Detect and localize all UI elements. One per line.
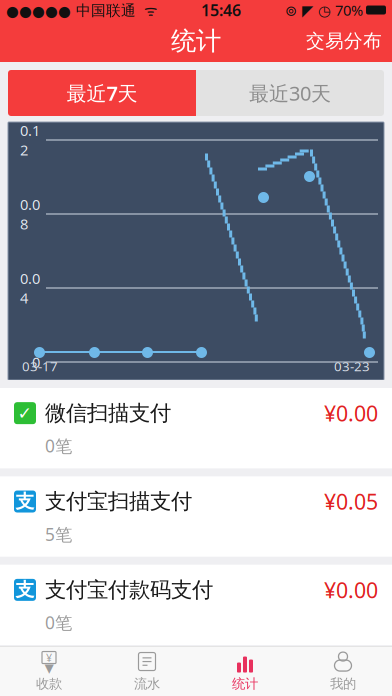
staticText: 交易分布 bbox=[306, 29, 382, 52]
button[interactable]: 流水 bbox=[98, 647, 196, 696]
staticText: ¥0.00 bbox=[324, 399, 378, 427]
staticText: ▾ bbox=[44, 657, 53, 678]
button[interactable]: 统计 bbox=[196, 647, 294, 696]
staticText: 支付宝扫描支付 bbox=[45, 488, 192, 515]
button[interactable]: 交易分布 bbox=[296, 21, 392, 60]
staticText: 统计 bbox=[171, 25, 221, 56]
button[interactable]: ✓ bbox=[0, 388, 392, 468]
staticText: ⊚ ◤ ◷ 70% bbox=[285, 0, 363, 20]
staticText: ●●●●● 中国联通 ᯤ bbox=[6, 0, 157, 20]
button[interactable]: 我的 bbox=[294, 647, 392, 696]
staticText: 03-17 bbox=[22, 357, 58, 375]
staticText: 我的 bbox=[330, 676, 356, 692]
staticText: 微信付款码支付 bbox=[45, 665, 192, 691]
staticText: 统计 bbox=[232, 676, 258, 692]
staticText: 15:46 bbox=[201, 0, 241, 21]
staticText: 最近30天 bbox=[249, 80, 331, 106]
button[interactable]: 支 bbox=[0, 565, 392, 645]
staticText: 03-23 bbox=[334, 357, 370, 375]
staticText: 0.04 bbox=[20, 268, 40, 307]
button[interactable]: 最近30天 bbox=[196, 70, 384, 116]
button[interactable]: ▾ bbox=[0, 647, 98, 696]
staticText: ¥0.00 bbox=[324, 576, 378, 604]
staticText: 最近7天 bbox=[66, 80, 137, 106]
button[interactable]: 支 bbox=[0, 476, 392, 557]
staticText: 0.12 bbox=[20, 120, 40, 159]
staticText: 支 bbox=[15, 578, 34, 601]
staticText: 收款 bbox=[36, 676, 62, 692]
button[interactable]: 最近7天 bbox=[8, 70, 196, 116]
staticText: ¥0.05 bbox=[324, 487, 378, 516]
staticText: ¥0.00 bbox=[324, 664, 378, 692]
staticText: 微信扫描支付 bbox=[45, 400, 171, 426]
staticText: 支 bbox=[15, 490, 34, 513]
staticText: ¥ bbox=[46, 650, 52, 665]
staticText: 5笔 bbox=[45, 523, 72, 546]
staticText: ✓ bbox=[17, 403, 32, 423]
staticText: 0笔 bbox=[45, 434, 72, 457]
staticText: 支付宝付款码支付 bbox=[45, 577, 213, 603]
staticText: 0.08 bbox=[20, 194, 40, 233]
staticText: 流水 bbox=[134, 676, 160, 692]
staticText: 0笔 bbox=[45, 611, 72, 634]
button[interactable]: ✓ bbox=[0, 653, 392, 696]
staticText: 0 bbox=[32, 352, 40, 372]
